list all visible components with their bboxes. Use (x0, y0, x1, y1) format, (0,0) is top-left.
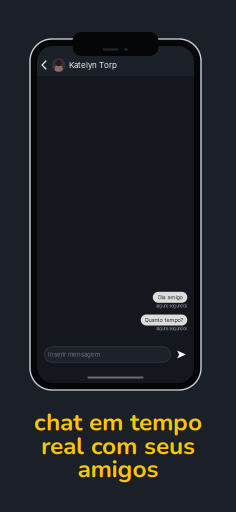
staticText: chat em tempo (34, 406, 202, 439)
staticText: Quanto tempo? (145, 317, 184, 323)
staticText: amigos (77, 453, 158, 486)
staticText: alguns segundos (156, 303, 187, 308)
button[interactable]: Katelyn Torp (37, 46, 194, 76)
staticText: real com seus (41, 430, 195, 463)
staticText: alguns segundos (156, 326, 187, 331)
staticText: Katelyn Torp (69, 60, 117, 70)
staticText: Inserir mensagem (48, 351, 100, 358)
button[interactable]: Inserir mensagem (44, 347, 170, 362)
button[interactable]: Send message (173, 347, 190, 362)
staticText: Ola amigo (158, 294, 183, 301)
